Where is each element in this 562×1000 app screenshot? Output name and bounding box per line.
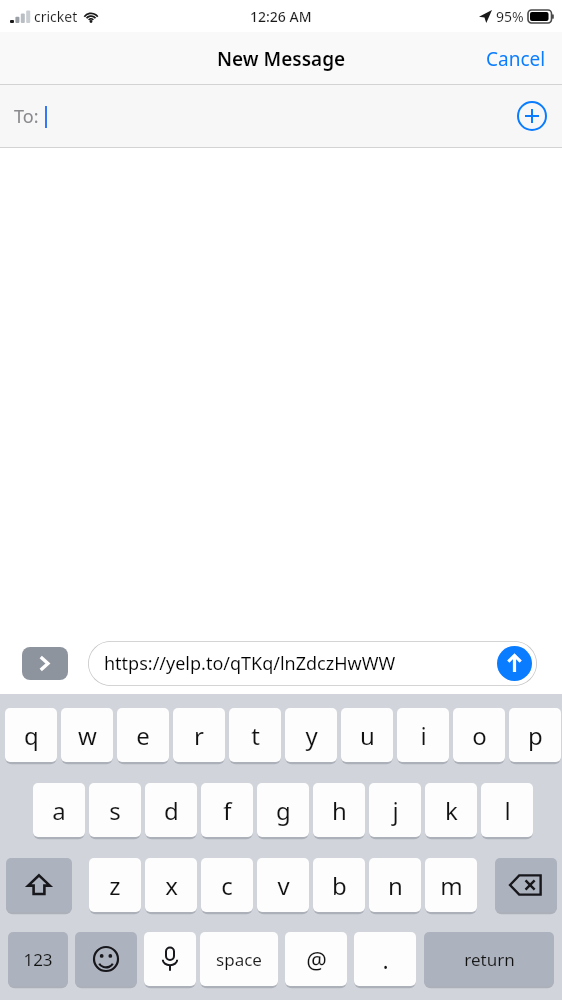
button[interactable]: h — [313, 783, 365, 837]
staticText: q — [24, 719, 39, 752]
staticText: y — [305, 719, 318, 752]
button[interactable]: v — [257, 858, 309, 912]
staticText: g — [276, 794, 291, 827]
button[interactable]: x — [145, 858, 197, 912]
button[interactable]: d — [145, 783, 197, 837]
button[interactable]: Emoji — [75, 932, 137, 986]
staticText: 12:26 AM — [250, 7, 312, 26]
staticText: n — [388, 869, 403, 902]
staticText: . — [382, 944, 389, 975]
button[interactable]: c — [201, 858, 253, 912]
button[interactable]: y — [285, 708, 337, 762]
button[interactable]: space — [200, 932, 278, 986]
button[interactable]: u — [341, 708, 393, 762]
staticText: i — [420, 719, 427, 752]
button[interactable]: Show apps — [22, 647, 68, 680]
button[interactable]: https://yelp.to/qTKq/lnZdczHwWW — [88, 641, 537, 686]
staticText: f — [223, 794, 232, 827]
staticText: r — [194, 719, 204, 752]
staticText: w — [78, 719, 97, 752]
staticText: h — [332, 794, 347, 827]
button[interactable]: r — [173, 708, 225, 762]
button[interactable]: b — [313, 858, 365, 912]
button[interactable]: Shift — [6, 858, 72, 912]
button[interactable]: 123 — [8, 932, 68, 986]
staticText: return — [464, 948, 515, 971]
button[interactable]: p — [509, 708, 561, 762]
staticText: c — [221, 869, 233, 902]
button[interactable]: f — [201, 783, 253, 837]
button[interactable]: n — [369, 858, 421, 912]
button[interactable]: Send — [497, 646, 532, 681]
staticText: New Message — [217, 46, 346, 72]
staticText: j — [392, 794, 399, 827]
staticText: t — [251, 719, 260, 752]
staticText: z — [109, 869, 121, 902]
staticText: 95% — [496, 7, 524, 26]
staticText: s — [109, 794, 121, 827]
staticText: Cancel — [486, 46, 546, 72]
staticText: 123 — [23, 948, 53, 971]
button[interactable]: @ — [285, 932, 347, 986]
button[interactable]: o — [453, 708, 505, 762]
staticText: p — [528, 719, 543, 752]
button[interactable]: Dictate — [144, 932, 196, 986]
staticText: e — [136, 719, 150, 752]
staticText: d — [164, 794, 179, 827]
button[interactable]: g — [257, 783, 309, 837]
button[interactable]: q — [5, 708, 57, 762]
button[interactable]: e — [117, 708, 169, 762]
button[interactable]: z — [89, 858, 141, 912]
staticText: cricket — [34, 7, 78, 26]
button[interactable]: t — [229, 708, 281, 762]
staticText: o — [472, 719, 487, 752]
button[interactable]: i — [397, 708, 449, 762]
staticText: u — [360, 719, 375, 752]
button[interactable]: Backspace — [495, 858, 557, 912]
staticText: To: — [14, 104, 39, 129]
button[interactable]: k — [425, 783, 477, 837]
button[interactable]: return — [424, 932, 554, 986]
staticText: @ — [306, 944, 327, 975]
button[interactable]: Cancel — [470, 36, 562, 82]
staticText: l — [504, 794, 511, 827]
staticText: https://yelp.to/qTKq/lnZdczHwWW — [104, 651, 396, 676]
button[interactable]: m — [425, 858, 477, 912]
button[interactable]: l — [481, 783, 533, 837]
button[interactable]: . — [354, 932, 416, 986]
staticText: space — [216, 948, 262, 971]
button[interactable]: j — [369, 783, 421, 837]
staticText: v — [277, 869, 290, 902]
staticText: b — [332, 869, 347, 902]
button[interactable]: w — [61, 708, 113, 762]
staticText: m — [440, 869, 463, 902]
staticText: a — [52, 794, 66, 827]
button[interactable]: a — [33, 783, 85, 837]
button[interactable]: Add contact — [514, 98, 550, 134]
staticText: x — [165, 869, 178, 902]
staticText: k — [445, 794, 458, 827]
button[interactable]: s — [89, 783, 141, 837]
